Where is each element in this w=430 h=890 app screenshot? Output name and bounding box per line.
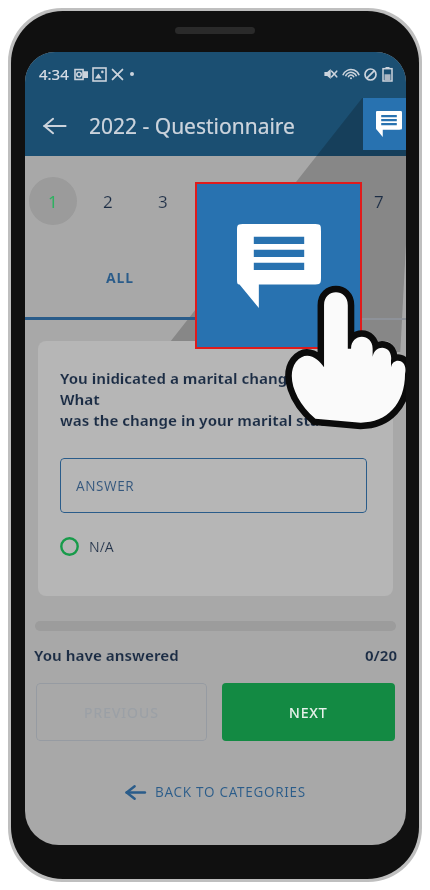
button[interactable]: Messages <box>363 98 406 150</box>
button[interactable]: 6 <box>298 168 352 234</box>
staticText: NEXT <box>289 703 328 722</box>
staticText: 1 <box>48 190 58 213</box>
staticText: 2022 - Questionnaire <box>89 112 295 141</box>
button[interactable]: N/A <box>60 529 114 563</box>
staticText: 0/20 <box>365 645 397 665</box>
staticText: PREVIOUS <box>84 703 159 722</box>
button[interactable]: NEXT <box>222 683 395 741</box>
button[interactable]: PREVIOUS <box>36 683 207 741</box>
button[interactable]: 2 <box>80 168 135 234</box>
staticText: You have answered <box>34 645 179 665</box>
staticText: N/A <box>89 537 114 556</box>
staticText: You inidicated a marital change this yea… <box>60 368 375 431</box>
staticText: 2 <box>103 190 113 213</box>
button[interactable]: 5 <box>244 168 298 234</box>
button[interactable]: 1 <box>25 168 80 234</box>
staticText: 3 <box>158 190 168 213</box>
staticText: ALL <box>106 268 135 287</box>
button[interactable]: ALL <box>25 234 215 320</box>
staticText: 7 <box>374 190 384 213</box>
button[interactable]: ANSWER <box>60 458 367 513</box>
button[interactable]: Back <box>33 104 77 148</box>
staticText: ANSWER <box>76 477 135 495</box>
staticText: BACK TO CATEGORIES <box>155 783 306 801</box>
button[interactable]: 4 <box>190 168 244 234</box>
button[interactable]: 3 <box>135 168 190 234</box>
staticText: 4:34 <box>39 64 69 84</box>
button[interactable]: BACK TO CATEGORIES <box>25 772 406 812</box>
button[interactable]: 7 <box>352 168 406 234</box>
